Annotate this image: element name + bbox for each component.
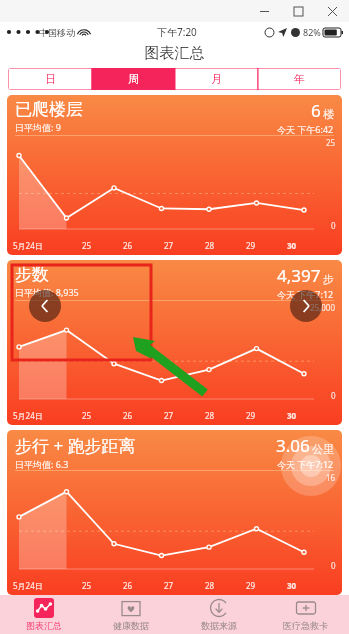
staticText: 4,397: [277, 264, 321, 287]
staticText: 30: [271, 410, 312, 421]
staticText: 5月24日: [13, 580, 66, 591]
staticText: 82%: [303, 26, 321, 38]
button[interactable]: Maximize: [281, 0, 315, 22]
staticText: 6: [311, 99, 321, 122]
button[interactable]: 步行 + 跑步距离: [7, 430, 342, 595]
staticText: 27: [148, 410, 189, 421]
staticText: 28: [189, 410, 230, 421]
button[interactable]: Minimize: [247, 0, 281, 22]
staticText: 今天 下午6:42: [277, 123, 334, 135]
staticText: 日平均值: 9: [15, 121, 61, 133]
button[interactable]: 数据来源: [175, 595, 262, 634]
staticText: 5月24日: [13, 410, 66, 421]
staticText: 中国移动: [39, 27, 75, 38]
staticText: 楼: [323, 107, 334, 121]
staticText: 图表汇总: [0, 44, 349, 63]
staticText: 周: [128, 72, 139, 86]
staticText: 25,000: [310, 302, 336, 313]
button[interactable]: 年: [258, 68, 341, 90]
button[interactable]: 医疗急救卡: [262, 595, 349, 634]
staticText: 今天 下午7:12: [277, 458, 334, 470]
staticText: 3.06: [276, 434, 310, 457]
staticText: 25: [326, 137, 336, 148]
staticText: 25: [66, 410, 107, 421]
staticText: 年: [294, 72, 305, 86]
staticText: 月: [211, 72, 222, 86]
staticText: 29: [230, 580, 271, 591]
staticText: 步: [323, 272, 334, 286]
staticText: 5月24日: [13, 240, 66, 251]
staticText: 日平均值: 8,935: [15, 286, 79, 298]
staticText: 28: [189, 240, 230, 251]
staticText: 26: [107, 580, 148, 591]
staticText: 日平均值: 6.3: [15, 458, 69, 470]
button[interactable]: 已爬楼层: [7, 95, 342, 255]
button[interactable]: Next: [290, 290, 322, 322]
button[interactable]: 月: [175, 68, 258, 90]
staticText: 0: [331, 390, 336, 401]
staticText: 公里: [312, 442, 334, 456]
staticText: 下午7:20: [157, 25, 197, 39]
button[interactable]: Close: [315, 0, 349, 22]
staticText: 0: [331, 220, 336, 231]
staticText: 已爬楼层: [15, 99, 83, 120]
staticText: 16: [326, 472, 336, 483]
staticText: 29: [230, 410, 271, 421]
staticText: 27: [148, 580, 189, 591]
button[interactable]: 图表汇总: [0, 595, 87, 634]
staticText: 29: [230, 240, 271, 251]
staticText: 28: [189, 580, 230, 591]
staticText: 30: [271, 240, 312, 251]
staticText: 步数: [15, 264, 49, 285]
button[interactable]: 周: [92, 68, 175, 90]
staticText: 医疗急救卡: [283, 620, 328, 631]
button[interactable]: 步数: [7, 260, 342, 425]
staticText: 25: [66, 240, 107, 251]
staticText: 27: [148, 240, 189, 251]
staticText: 数据来源: [201, 620, 237, 631]
staticText: 健康数据: [113, 620, 149, 631]
staticText: 图表汇总: [26, 620, 62, 631]
staticText: 26: [107, 410, 148, 421]
staticText: 0: [331, 560, 336, 571]
staticText: 日: [45, 72, 56, 86]
staticText: 25: [66, 580, 107, 591]
button[interactable]: Previous: [29, 290, 61, 322]
button[interactable]: 健康数据: [87, 595, 174, 634]
staticText: 步行 + 跑步距离: [15, 434, 136, 457]
staticText: 今天 下午7:12: [277, 288, 334, 300]
staticText: 30: [271, 580, 312, 591]
staticText: 26: [107, 240, 148, 251]
button[interactable]: 日: [8, 68, 92, 90]
